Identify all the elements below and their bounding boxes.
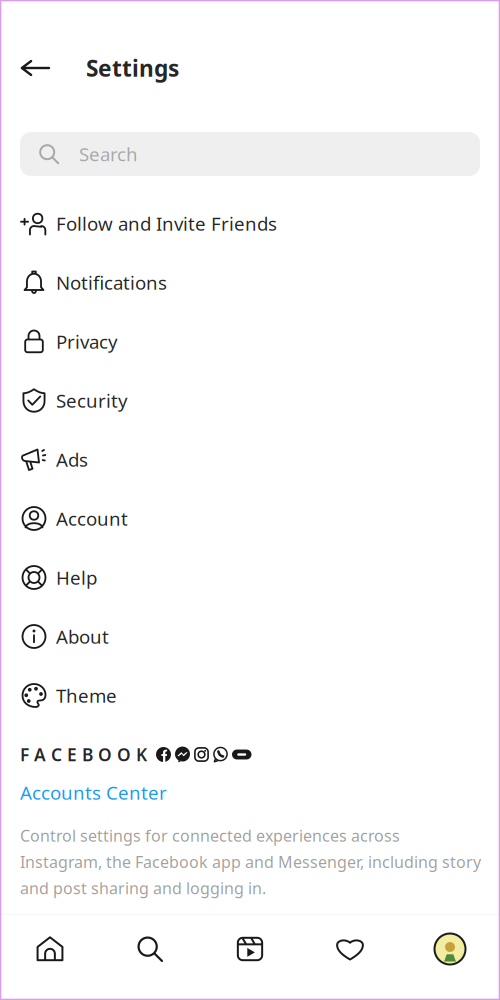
button[interactable]: Search: [100, 915, 200, 983]
button[interactable]: Home: [0, 915, 100, 983]
button[interactable]: Privacy: [0, 312, 500, 371]
button[interactable]: Ads: [0, 430, 500, 489]
button[interactable]: About: [0, 607, 500, 666]
staticText: Settings: [86, 53, 179, 83]
staticText: Instagram, the Facebook app and Messenge…: [20, 851, 481, 872]
button[interactable]: Account: [0, 489, 500, 548]
button[interactable]: Accounts Center: [20, 766, 167, 805]
staticText: F A C E B O O K: [20, 743, 147, 766]
staticText: Theme: [56, 683, 117, 708]
staticText: Account: [56, 506, 128, 531]
button[interactable]: Theme: [0, 666, 500, 725]
button[interactable]: Profile: [400, 915, 500, 983]
button[interactable]: Follow and Invite Friends: [0, 194, 500, 253]
staticText: Privacy: [56, 329, 118, 354]
staticText: Follow and Invite Friends: [56, 211, 277, 236]
staticText: About: [56, 624, 109, 649]
staticText: Search: [79, 142, 138, 166]
staticText: Control settings for connected experienc…: [20, 825, 400, 846]
button[interactable]: Activity: [300, 915, 400, 983]
button[interactable]: Help: [0, 548, 500, 607]
staticText: Security: [56, 388, 128, 413]
button[interactable]: Search: [20, 132, 480, 176]
button[interactable]: Back: [5, 38, 65, 98]
button[interactable]: Security: [0, 371, 500, 430]
staticText: and post sharing and logging in.: [20, 877, 266, 898]
button[interactable]: Reels: [200, 915, 300, 983]
staticText: Accounts Center: [20, 780, 167, 805]
staticText: Help: [56, 565, 97, 590]
button[interactable]: Notifications: [0, 253, 500, 312]
staticText: Ads: [56, 447, 88, 472]
staticText: Notifications: [56, 270, 167, 295]
